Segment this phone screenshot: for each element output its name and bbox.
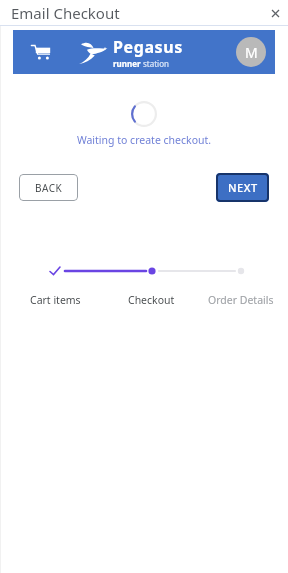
staticText: BACK [35, 181, 63, 195]
button[interactable]: Account [236, 37, 266, 67]
staticText: runner [113, 58, 143, 69]
button[interactable]: Cart [27, 38, 55, 66]
staticText: Checkout [128, 293, 175, 307]
button[interactable]: Checkout [110, 293, 193, 307]
staticText: Waiting to create checkout. [0, 133, 288, 147]
button[interactable]: BACK [19, 174, 78, 201]
button[interactable]: NEXT [216, 173, 269, 202]
staticText: station [143, 58, 169, 69]
staticText: Email Checkout [11, 3, 120, 23]
button[interactable]: Cart items [0, 293, 110, 307]
staticText: Order Details [208, 293, 274, 307]
staticText: Cart items [30, 293, 81, 307]
staticText: NEXT [228, 180, 258, 195]
button[interactable]: Order Details [193, 293, 288, 307]
staticText: M [245, 43, 258, 62]
button[interactable]: Close [266, 4, 284, 22]
staticText: Pegasus [113, 36, 183, 58]
